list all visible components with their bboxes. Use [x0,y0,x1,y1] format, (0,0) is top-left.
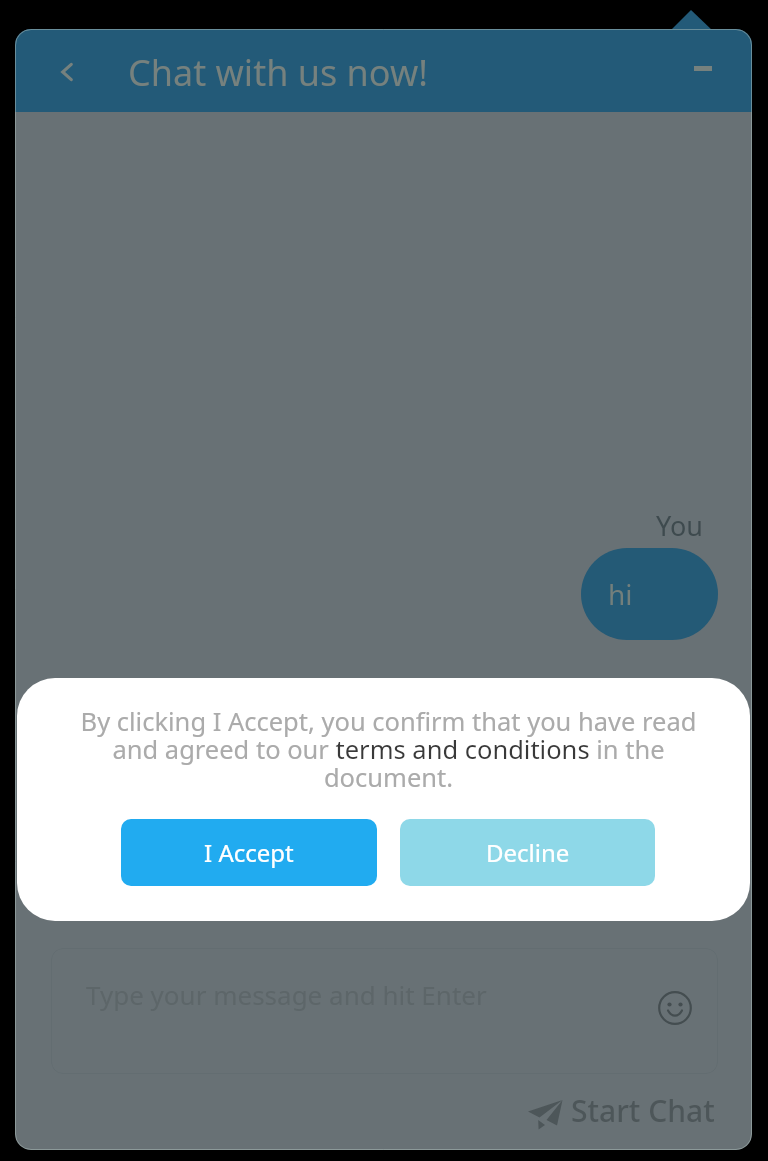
staticText: hi [608,575,633,613]
staticText: Start Chat [571,1090,715,1131]
button[interactable]: Back [40,30,94,113]
staticText: You [656,507,703,544]
button[interactable]: Decline [400,819,655,886]
button[interactable]: Emoji [652,985,698,1031]
staticText: Type your message and hit Enter [86,977,487,1012]
button[interactable]: Start Chat [524,1090,715,1131]
button[interactable]: hi [581,548,718,640]
staticText: Chat with us now! [128,48,428,97]
button[interactable]: Minimize [696,38,752,98]
staticText: Decline [486,836,570,869]
button[interactable]: I Accept [121,819,377,886]
staticText: By clicking I Accept, you confirm that y… [71,704,706,794]
staticText: I Accept [204,836,294,869]
